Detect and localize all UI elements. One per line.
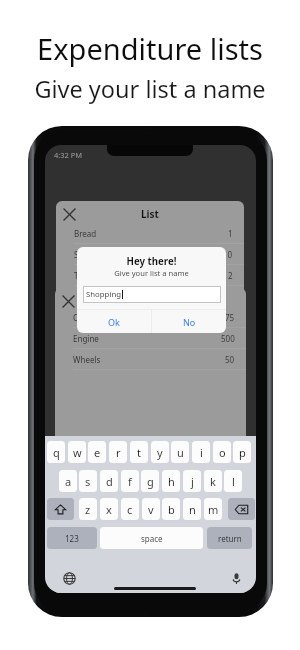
button[interactable]: Tea bbox=[56, 265, 244, 286]
button[interactable]: Bread bbox=[56, 223, 244, 244]
button[interactable]: Dictate bbox=[229, 571, 244, 586]
staticText: Expenditure lists bbox=[0, 29, 300, 68]
staticText: 123 bbox=[65, 533, 79, 544]
staticText: y bbox=[157, 445, 163, 460]
button[interactable]: e bbox=[88, 441, 106, 463]
staticText: Bread bbox=[74, 228, 97, 239]
button[interactable]: Close bbox=[60, 293, 76, 309]
staticText: i bbox=[200, 445, 203, 460]
staticText: return bbox=[218, 533, 242, 544]
button[interactable]: return bbox=[207, 527, 252, 549]
button[interactable]: d bbox=[100, 470, 118, 492]
staticText: 4:32 PM bbox=[54, 150, 83, 160]
staticText: 2 bbox=[228, 270, 233, 281]
button[interactable]: q bbox=[47, 441, 65, 463]
staticText: a bbox=[65, 474, 72, 489]
button[interactable]: space bbox=[100, 527, 203, 549]
staticText: No bbox=[183, 316, 196, 328]
button[interactable]: p bbox=[233, 441, 251, 463]
button[interactable]: m bbox=[204, 498, 222, 520]
staticText: Soap bbox=[74, 249, 93, 260]
staticText: Engine bbox=[73, 333, 99, 344]
button[interactable]: Change keyboard language bbox=[62, 571, 77, 586]
button[interactable]: r bbox=[109, 441, 127, 463]
button[interactable]: w bbox=[68, 441, 86, 463]
button[interactable]: Close bbox=[61, 206, 77, 222]
button[interactable]: Backspace bbox=[228, 498, 255, 520]
button[interactable]: v bbox=[142, 498, 160, 520]
staticText: List bbox=[141, 207, 159, 221]
button[interactable]: k bbox=[204, 470, 222, 492]
staticText: o bbox=[219, 445, 226, 460]
button[interactable]: y bbox=[151, 441, 169, 463]
staticText: Tea bbox=[74, 270, 87, 281]
button[interactable]: h bbox=[162, 470, 180, 492]
staticText: 50 bbox=[225, 354, 235, 365]
staticText: Give your list a name bbox=[77, 268, 226, 278]
staticText: f bbox=[128, 474, 132, 489]
staticText: Ok bbox=[108, 316, 120, 328]
staticText: space bbox=[141, 533, 163, 544]
staticText: Wheels bbox=[73, 354, 101, 365]
staticText: v bbox=[148, 502, 154, 517]
button[interactable]: l bbox=[224, 470, 242, 492]
staticText: t bbox=[137, 445, 141, 460]
staticText: r bbox=[116, 445, 121, 460]
button[interactable]: f bbox=[121, 470, 139, 492]
button[interactable]: u bbox=[171, 441, 189, 463]
staticText: q bbox=[53, 445, 60, 460]
staticText: 75 bbox=[225, 312, 235, 323]
staticText: p bbox=[239, 445, 246, 460]
staticText: j bbox=[191, 474, 194, 489]
staticText: x bbox=[106, 502, 112, 517]
button[interactable]: No bbox=[152, 310, 226, 333]
staticText: Give your list a name bbox=[0, 73, 300, 105]
button[interactable]: s bbox=[79, 470, 97, 492]
button[interactable]: Wheels bbox=[55, 349, 246, 370]
staticText: b bbox=[168, 502, 175, 517]
staticText: u bbox=[177, 445, 184, 460]
staticText: 10 bbox=[223, 249, 233, 260]
staticText: m bbox=[208, 502, 219, 517]
staticText: w bbox=[73, 445, 82, 460]
staticText: z bbox=[85, 502, 91, 517]
staticText: d bbox=[106, 474, 113, 489]
button[interactable]: i bbox=[192, 441, 210, 463]
button[interactable]: n bbox=[183, 498, 201, 520]
button[interactable]: Shift bbox=[47, 498, 74, 520]
button[interactable]: o bbox=[213, 441, 231, 463]
staticText: 1 bbox=[228, 228, 233, 239]
button[interactable]: Soap bbox=[56, 244, 244, 265]
button[interactable]: Candy bbox=[55, 307, 246, 328]
staticText: Candy bbox=[73, 312, 97, 323]
button[interactable]: g bbox=[141, 470, 159, 492]
staticText: n bbox=[189, 502, 196, 517]
staticText: h bbox=[168, 474, 175, 489]
staticText: Shopping bbox=[86, 289, 122, 300]
staticText: s bbox=[85, 474, 91, 489]
button[interactable]: Ok bbox=[77, 310, 151, 333]
staticText: c bbox=[127, 502, 133, 517]
button[interactable]: Engine bbox=[55, 328, 246, 349]
button[interactable]: 123 bbox=[47, 527, 97, 549]
button[interactable]: t bbox=[130, 441, 148, 463]
button[interactable]: j bbox=[183, 470, 201, 492]
staticText: l bbox=[232, 474, 235, 489]
button[interactable]: z bbox=[79, 498, 97, 520]
staticText: k bbox=[210, 474, 216, 489]
staticText: e bbox=[94, 445, 101, 460]
button[interactable]: x bbox=[100, 498, 118, 520]
button[interactable]: c bbox=[121, 498, 139, 520]
staticText: Hey there! bbox=[77, 255, 226, 268]
staticText: g bbox=[147, 474, 154, 489]
button[interactable]: a bbox=[59, 470, 77, 492]
button[interactable]: b bbox=[162, 498, 180, 520]
staticText: 500 bbox=[221, 333, 235, 344]
